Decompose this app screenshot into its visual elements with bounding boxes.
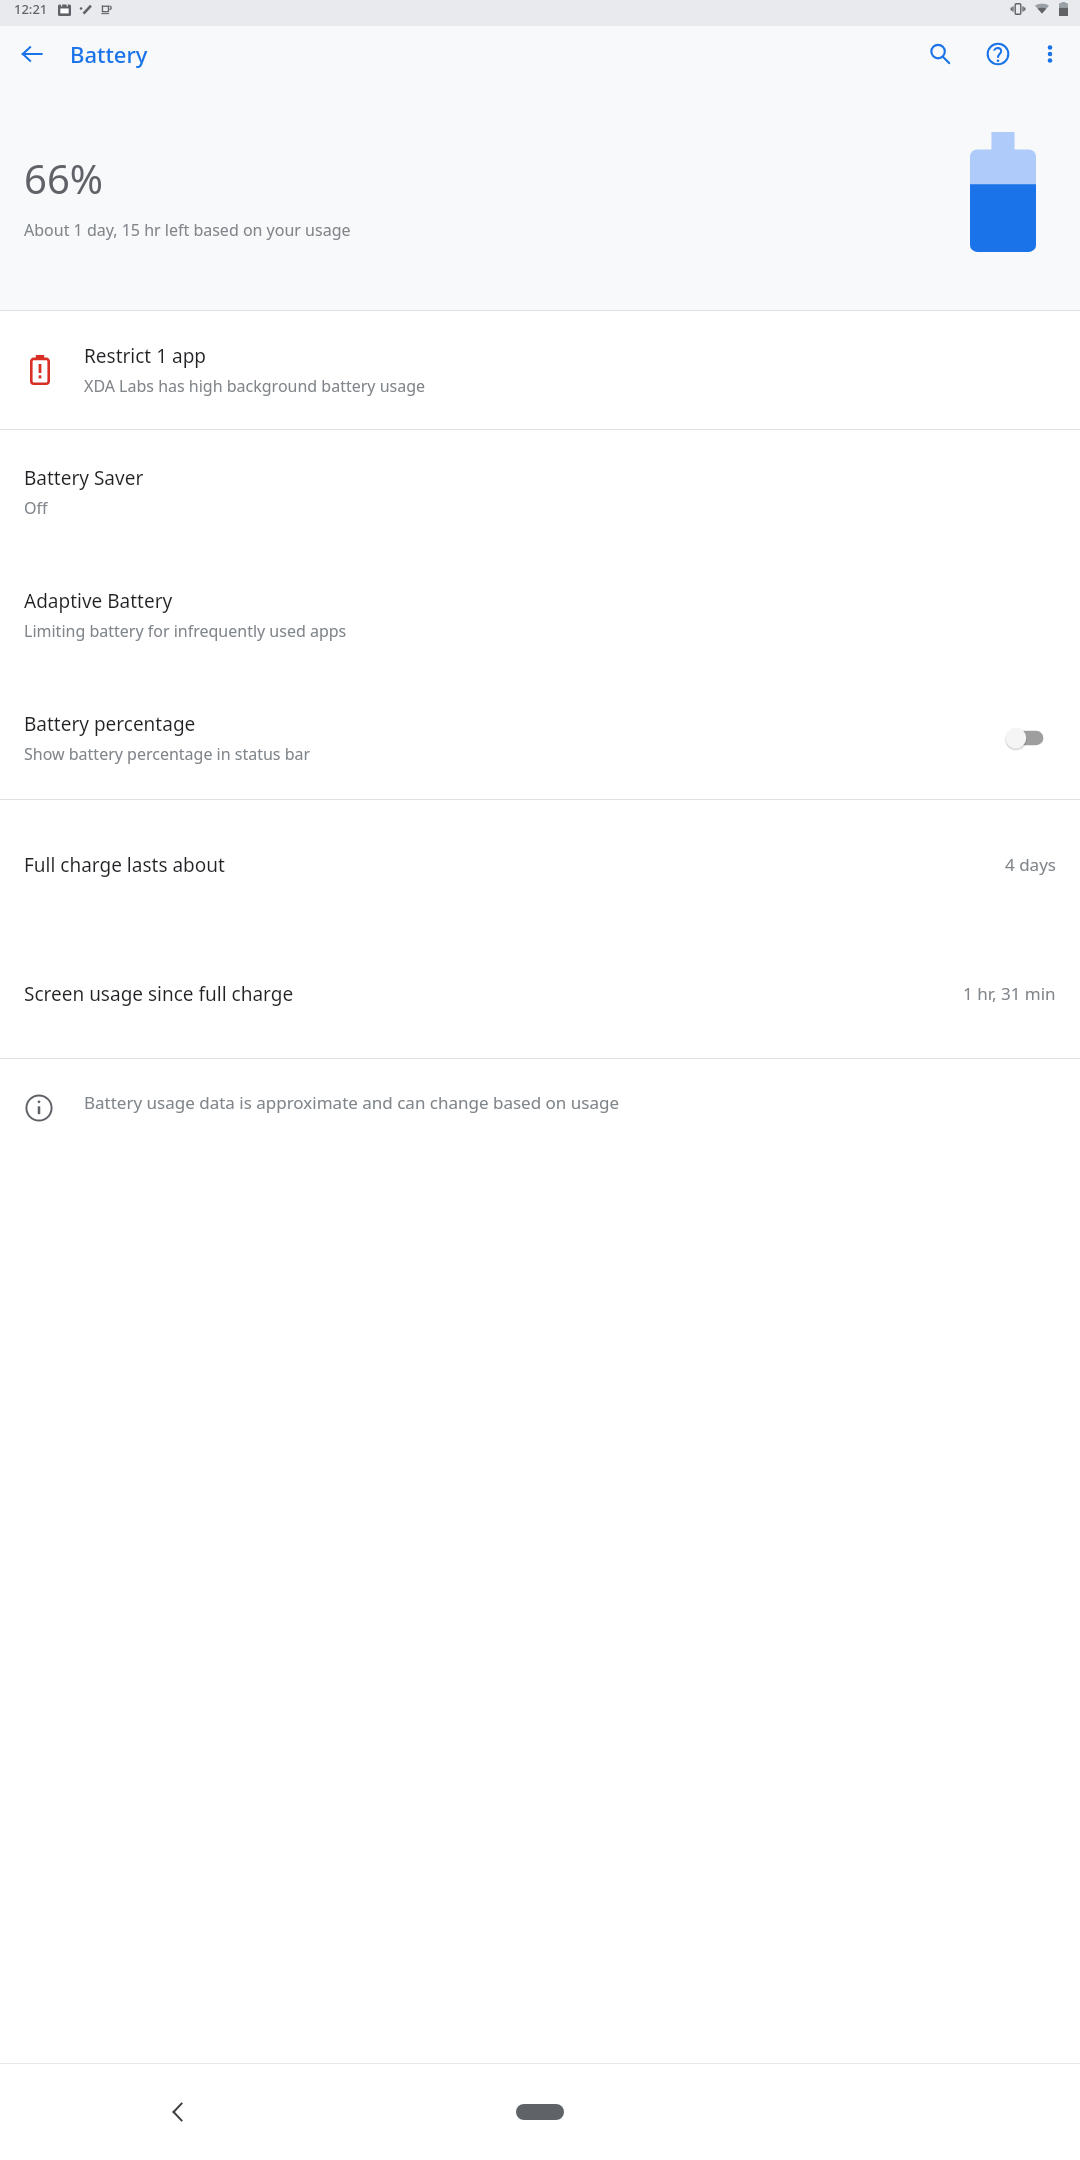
staticText: 1 hr, 31 min <box>963 982 1056 1005</box>
staticText: Screen usage since full charge <box>24 981 963 1007</box>
staticText: Off <box>24 497 48 519</box>
staticText: Battery Saver <box>24 465 144 491</box>
staticText: Battery <box>70 39 148 69</box>
button[interactable]: More options <box>1026 30 1074 78</box>
button[interactable]: Restrict 1 app <box>0 311 1080 429</box>
button[interactable]: Battery percentage <box>0 676 1080 799</box>
staticText: 12:21 <box>14 0 48 18</box>
button[interactable]: Adaptive Battery <box>0 553 1080 676</box>
button[interactable]: Search <box>916 30 964 78</box>
button[interactable]: Battery Saver <box>0 430 1080 553</box>
button[interactable]: Full charge lasts about <box>0 800 1080 929</box>
staticText: 66% <box>24 151 103 205</box>
staticText: 4 days <box>1005 853 1056 876</box>
staticText: Restrict 1 app <box>84 343 206 369</box>
button[interactable]: Back <box>148 2082 208 2142</box>
button[interactable]: Home <box>500 2090 580 2134</box>
button[interactable]: Help <box>974 30 1022 78</box>
staticText: Show battery percentage in status bar <box>24 743 311 765</box>
staticText: Limiting battery for infrequently used a… <box>24 620 347 642</box>
staticText: About 1 day, 15 hr left based on your us… <box>24 219 351 241</box>
staticText: Adaptive Battery <box>24 588 173 614</box>
staticText: XDA Labs has high background battery usa… <box>84 375 426 397</box>
button[interactable]: Battery percentage toggle <box>1004 718 1058 758</box>
staticText: Battery usage data is approximate and ca… <box>84 1091 620 1114</box>
button[interactable]: Screen usage since full charge <box>0 929 1080 1058</box>
staticText: Full charge lasts about <box>24 852 1005 878</box>
button[interactable]: Back <box>8 30 56 78</box>
staticText: Battery percentage <box>24 711 196 737</box>
